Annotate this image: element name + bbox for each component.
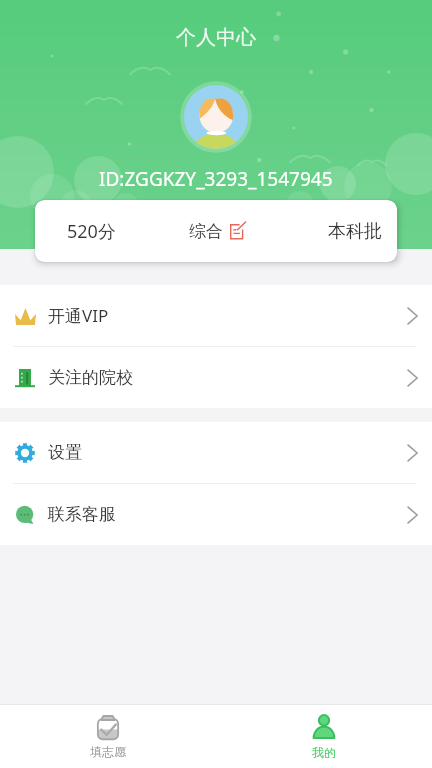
button[interactable]: 520分 bbox=[35, 200, 397, 262]
button[interactable]: 关注的院校 bbox=[0, 347, 432, 408]
button[interactable]: 我的 bbox=[216, 705, 432, 768]
staticText: 联系客服 bbox=[48, 504, 116, 525]
staticText: 填志愿 bbox=[90, 744, 126, 759]
staticText: ID:ZGGKZY_3293_1547945 bbox=[99, 166, 333, 192]
staticText: 个人中心 bbox=[176, 25, 256, 50]
button[interactable]: 头像 bbox=[180, 81, 252, 153]
button[interactable]: 联系客服 bbox=[0, 484, 432, 545]
button[interactable]: 综合 编辑选科 bbox=[189, 221, 246, 242]
staticText: 我的 bbox=[312, 745, 336, 760]
button[interactable]: 开通VIP bbox=[0, 285, 432, 346]
button[interactable]: 设置 bbox=[0, 422, 432, 483]
staticText: 本科批 bbox=[328, 220, 382, 243]
staticText: 关注的院校 bbox=[48, 367, 133, 388]
staticText: 综合 bbox=[189, 221, 223, 242]
button[interactable]: 填志愿 bbox=[0, 705, 216, 768]
staticText: 设置 bbox=[48, 442, 82, 463]
staticText: 开通VIP bbox=[48, 304, 109, 327]
staticText: 520分 bbox=[67, 219, 116, 244]
